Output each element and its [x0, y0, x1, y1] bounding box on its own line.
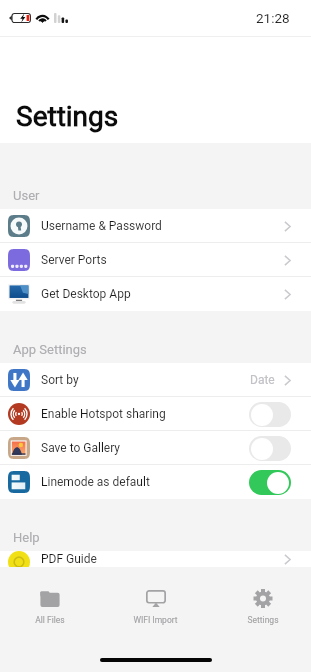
- staticText: Get Desktop App: [41, 287, 131, 301]
- button[interactable]: Enable Hotspot sharing: [0, 397, 311, 431]
- staticText: Sort by: [41, 373, 79, 387]
- staticText: Settings: [16, 100, 119, 133]
- staticText: Settings: [247, 615, 279, 625]
- staticText: Enable Hotspot sharing: [41, 407, 166, 421]
- staticText: Username & Password: [41, 219, 162, 233]
- button[interactable]: Sort by: [0, 363, 311, 397]
- button[interactable]: PDF Guide: [0, 551, 311, 567]
- staticText: Help: [13, 530, 40, 545]
- button[interactable]: Settings: [211, 567, 311, 631]
- button[interactable]: Server Ports: [0, 243, 311, 277]
- button[interactable]: All Files: [0, 567, 101, 631]
- button[interactable]: On: [249, 470, 291, 495]
- button[interactable]: WIFI Import: [104, 567, 207, 631]
- staticText: Linemode as default: [41, 475, 150, 489]
- staticText: Server Ports: [41, 253, 107, 267]
- button[interactable]: Off: [249, 402, 291, 427]
- button[interactable]: Get Desktop App: [0, 277, 311, 311]
- staticText: 21:28: [256, 10, 290, 26]
- staticText: App Settings: [13, 342, 87, 357]
- button[interactable]: Linemode as default: [0, 465, 311, 499]
- button[interactable]: Off: [249, 436, 291, 461]
- staticText: Save to Gallery: [41, 441, 121, 455]
- button[interactable]: Save to Gallery: [0, 431, 311, 465]
- staticText: WIFI Import: [133, 615, 178, 625]
- button[interactable]: Username & Password: [0, 209, 311, 243]
- staticText: Date: [250, 373, 275, 387]
- staticText: User: [13, 188, 40, 203]
- staticText: PDF Guide: [41, 552, 97, 566]
- staticText: All Files: [35, 615, 65, 625]
